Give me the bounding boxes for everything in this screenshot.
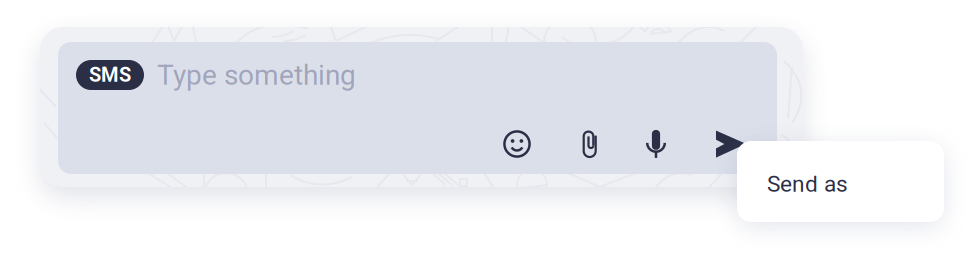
- staticText: Type something: [157, 59, 356, 91]
- button[interactable]: Attach file: [567, 121, 613, 167]
- button[interactable]: SMS: [76, 60, 144, 90]
- button[interactable]: Record voice message: [633, 121, 679, 167]
- button[interactable]: Send: [708, 121, 754, 167]
- button[interactable]: Emoji: [494, 121, 540, 167]
- staticText: SMS: [89, 63, 131, 87]
- button[interactable]: Send as: [737, 141, 944, 222]
- staticText: Send as: [767, 171, 848, 197]
